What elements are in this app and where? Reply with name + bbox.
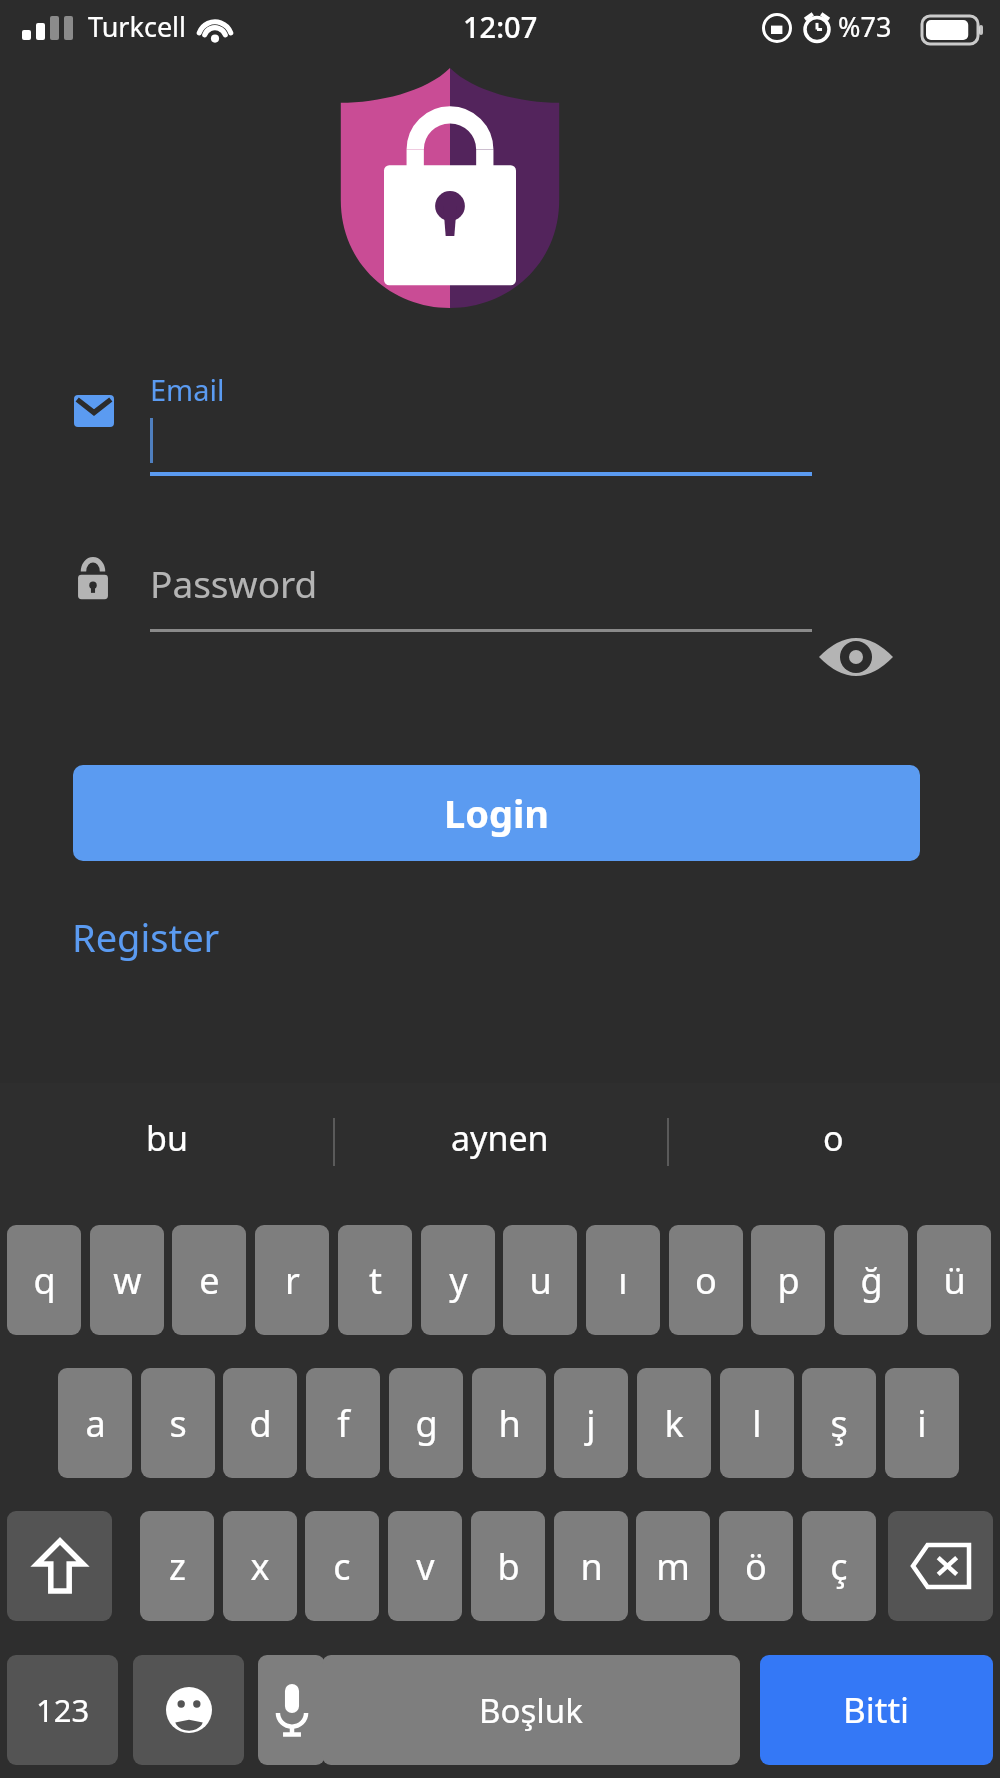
staticText: y: [449, 1256, 468, 1305]
staticText: e: [199, 1256, 220, 1305]
button[interactable]: ü: [917, 1225, 991, 1335]
staticText: Bitti: [843, 1686, 910, 1734]
button[interactable]: Backspace: [888, 1511, 993, 1621]
staticText: ş: [830, 1399, 848, 1448]
staticText: o: [695, 1256, 717, 1305]
button[interactable]: Login: [73, 765, 920, 861]
other: Password: [76, 558, 110, 600]
staticText: j: [586, 1399, 596, 1448]
staticText: ö: [745, 1542, 767, 1591]
staticText: bu: [146, 1115, 188, 1161]
button[interactable]: ğ: [834, 1225, 908, 1335]
staticText: f: [337, 1399, 350, 1448]
staticText: Boşluk: [479, 1688, 583, 1733]
button[interactable]: l: [720, 1368, 794, 1478]
button[interactable]: Show password: [820, 630, 892, 684]
staticText: o: [823, 1115, 844, 1161]
staticText: Register: [72, 911, 220, 963]
staticText: n: [580, 1542, 603, 1591]
button[interactable]: Register: [72, 911, 220, 963]
button[interactable]: ç: [802, 1511, 876, 1621]
button[interactable]: u: [503, 1225, 577, 1335]
staticText: m: [656, 1542, 690, 1591]
button[interactable]: Emoji: [133, 1655, 244, 1765]
staticText: 123: [36, 1689, 90, 1731]
button[interactable]: w: [90, 1225, 164, 1335]
button[interactable]: k: [637, 1368, 711, 1478]
staticText: p: [777, 1256, 800, 1305]
button[interactable]: aynen: [333, 1083, 666, 1193]
button[interactable]: x: [223, 1511, 297, 1621]
staticText: v: [416, 1542, 435, 1591]
button[interactable]: bu: [0, 1083, 333, 1193]
button[interactable]: t: [338, 1225, 412, 1335]
staticText: b: [497, 1542, 520, 1591]
staticText: Password: [150, 558, 318, 608]
button[interactable]: q: [7, 1225, 81, 1335]
button[interactable]: b: [471, 1511, 545, 1621]
button[interactable]: c: [305, 1511, 379, 1621]
button[interactable]: s: [141, 1368, 215, 1478]
staticText: q: [33, 1256, 56, 1305]
staticText: ı: [618, 1256, 628, 1305]
other: Email: [74, 395, 114, 427]
button[interactable]: g: [389, 1368, 463, 1478]
button[interactable]: a: [58, 1368, 132, 1478]
staticText: ü: [943, 1256, 966, 1305]
staticText: 12:07: [463, 7, 538, 46]
button[interactable]: e: [172, 1225, 246, 1335]
staticText: s: [169, 1399, 187, 1448]
staticText: r: [285, 1256, 300, 1305]
staticText: k: [664, 1399, 684, 1448]
staticText: ğ: [860, 1256, 883, 1305]
staticText: a: [85, 1399, 106, 1448]
button[interactable]: Bitti: [760, 1655, 993, 1765]
button[interactable]: f: [306, 1368, 380, 1478]
staticText: g: [415, 1399, 438, 1448]
button[interactable]: ö: [719, 1511, 793, 1621]
staticText: x: [250, 1542, 270, 1591]
staticText: Login: [444, 787, 550, 839]
button[interactable]: o: [669, 1225, 743, 1335]
button[interactable]: ı: [586, 1225, 660, 1335]
staticText: l: [752, 1399, 762, 1448]
button[interactable]: d: [223, 1368, 297, 1478]
staticText: ç: [830, 1542, 848, 1591]
staticText: z: [169, 1542, 186, 1591]
button[interactable]: h: [472, 1368, 546, 1478]
button[interactable]: Boşluk: [322, 1655, 740, 1765]
button[interactable]: n: [554, 1511, 628, 1621]
staticText: %73: [838, 8, 892, 45]
button[interactable]: r: [255, 1225, 329, 1335]
button[interactable]: 123: [7, 1655, 118, 1765]
staticText: w: [113, 1256, 142, 1305]
button[interactable]: i: [885, 1368, 959, 1478]
staticText: i: [917, 1399, 927, 1448]
staticText: d: [249, 1399, 272, 1448]
staticText: u: [529, 1256, 552, 1305]
staticText: Turkcell: [88, 8, 187, 45]
button[interactable]: o: [667, 1083, 1000, 1193]
button[interactable]: v: [388, 1511, 462, 1621]
staticText: c: [333, 1542, 351, 1591]
staticText: Email: [150, 370, 225, 409]
button[interactable]: Voice input: [258, 1655, 325, 1765]
button[interactable]: p: [751, 1225, 825, 1335]
button[interactable]: ş: [802, 1368, 876, 1478]
button[interactable]: j: [554, 1368, 628, 1478]
staticText: t: [369, 1256, 382, 1305]
button[interactable]: y: [421, 1225, 495, 1335]
staticText: h: [498, 1399, 521, 1448]
button[interactable]: z: [140, 1511, 214, 1621]
button[interactable]: m: [636, 1511, 710, 1621]
button[interactable]: Shift: [7, 1511, 112, 1621]
staticText: aynen: [451, 1115, 549, 1161]
